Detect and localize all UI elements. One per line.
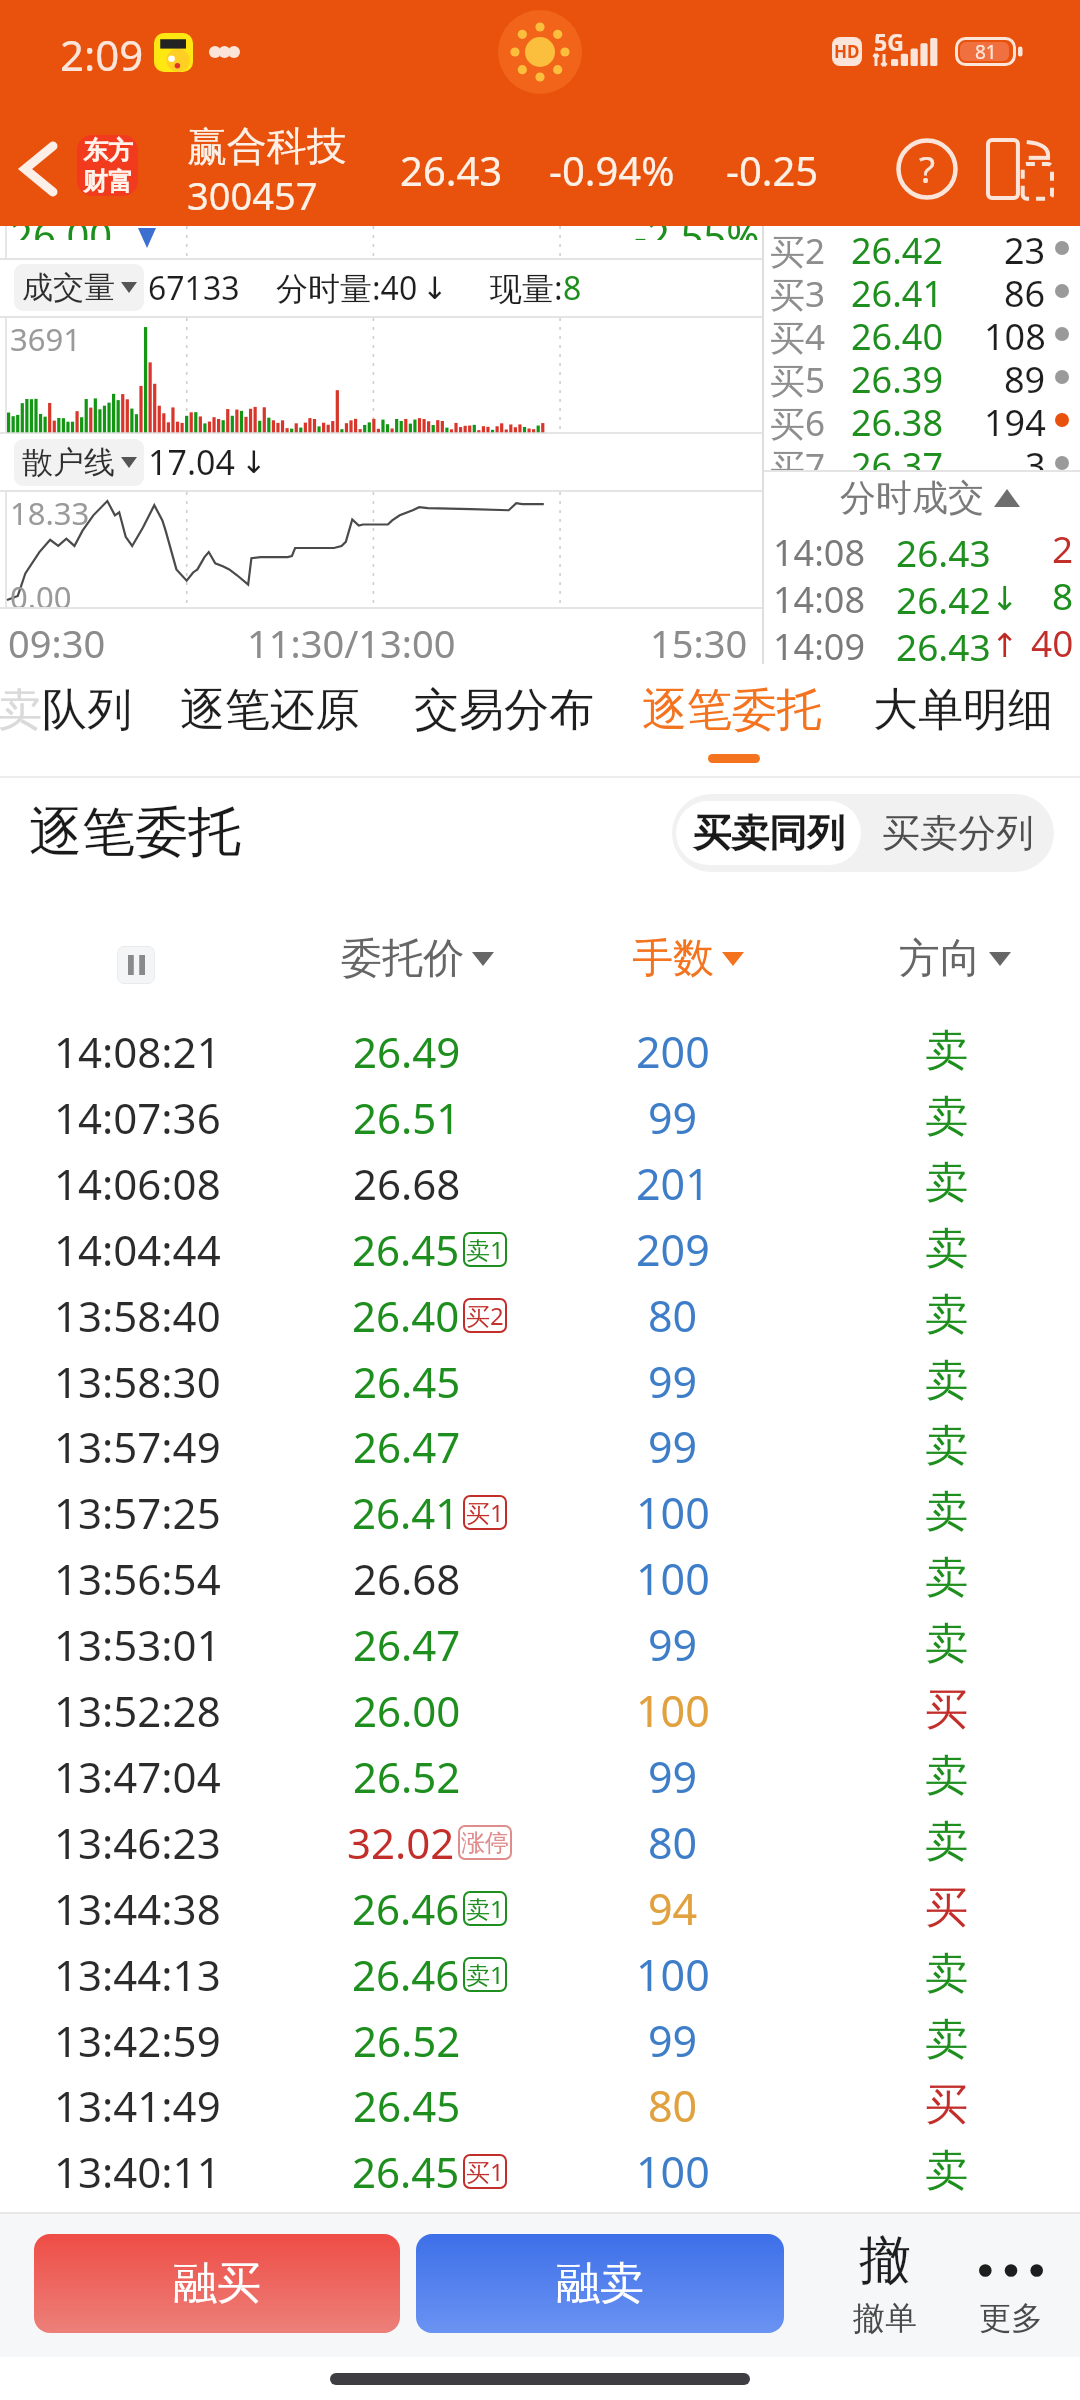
button[interactable]: 14:04:44 [0, 1216, 1080, 1282]
staticText: 0.00 [10, 576, 72, 618]
staticText: 17.04 [148, 439, 235, 485]
staticText: 买 [925, 1881, 968, 1935]
button[interactable]: 13:57:49 [0, 1413, 1080, 1479]
staticText: 卖 [925, 1156, 968, 1210]
staticText: 14:08:21 [54, 1023, 221, 1080]
button[interactable]: 融卖 [416, 2234, 784, 2333]
staticText: 卖 [925, 1485, 968, 1539]
button[interactable]: 大单明细 [873, 664, 1053, 756]
staticText: ↓ [422, 270, 448, 306]
button[interactable]: 逐笔委托 [642, 664, 822, 756]
staticText: 手数 [632, 933, 714, 985]
button[interactable]: 13:46:23 [0, 1809, 1080, 1875]
button[interactable]: 买卖同列 [676, 801, 861, 865]
staticText: 26.45 [352, 2143, 460, 2200]
button[interactable]: 买6 [764, 398, 1080, 441]
staticText: 卖 [925, 1815, 968, 1869]
button[interactable]: 方向 [865, 909, 1045, 1009]
staticText: 80 [648, 1286, 698, 1345]
staticText: 26.00 [353, 1682, 461, 1739]
staticText: 买2 [466, 1299, 504, 1332]
button[interactable]: 13:57:25 [0, 1479, 1080, 1545]
button[interactable]: 13:44:13 [0, 1941, 1080, 2007]
button[interactable]: Help [885, 127, 969, 211]
staticText: 11:30/13:00 [247, 617, 456, 669]
staticText: 13:53:01 [54, 1616, 221, 1673]
staticText: 卖 [925, 1024, 968, 1078]
staticText: 2:09 [60, 26, 144, 83]
staticText: 100 [636, 1549, 710, 1608]
staticText: 融卖 [556, 2256, 644, 2311]
staticText: 散户线 [22, 443, 115, 482]
staticText: 14:09 [773, 622, 866, 664]
staticText: 卖 [925, 2013, 968, 2067]
button[interactable]: 13:40:11 [0, 2138, 1080, 2204]
button[interactable]: 买3 [764, 269, 1080, 312]
button[interactable]: 分时成交 [764, 471, 1080, 523]
staticText: 卖 [925, 1617, 968, 1671]
button[interactable]: 成交量 [14, 264, 144, 311]
staticText: 分时量:40 [276, 266, 418, 310]
button[interactable]: 买2 [764, 226, 1080, 269]
staticText: 100 [636, 1483, 710, 1542]
button[interactable]: 14:07:36 [0, 1084, 1080, 1150]
button[interactable]: 逐笔还原 [180, 664, 360, 756]
button[interactable]: 13:47:04 [0, 1743, 1080, 1809]
button[interactable]: East Money logo [77, 135, 138, 196]
staticText: -0.25 [726, 143, 819, 197]
staticText: 逐笔还原 [180, 682, 360, 739]
staticText: 14:04:44 [54, 1221, 221, 1278]
staticText: -0.94% [549, 143, 675, 197]
staticText: 财富 [83, 166, 133, 196]
button[interactable]: 委托价 [327, 909, 507, 1009]
button[interactable]: 13:58:40 [0, 1282, 1080, 1348]
button[interactable]: 13:41:49 [0, 2072, 1080, 2138]
button[interactable]: 13:56:54 [0, 1545, 1080, 1611]
staticText: 撤单 [853, 2298, 917, 2338]
button[interactable]: 买卖分列 [865, 801, 1050, 865]
staticText: 卖1 [466, 1233, 504, 1266]
button[interactable]: 13:58:30 [0, 1348, 1080, 1414]
staticText: 买6 [770, 399, 826, 442]
button[interactable]: 13:44:38 [0, 1875, 1080, 1941]
staticText: 26.41 [851, 269, 944, 312]
button[interactable]: 13:52:28 [0, 1677, 1080, 1743]
staticText: 26.39 [851, 355, 944, 398]
button[interactable]: 手数 [598, 909, 778, 1009]
button[interactable]: 14:08 [764, 523, 1080, 570]
staticText: 26.68 [353, 1155, 461, 1212]
button[interactable]: Pause updates [117, 946, 155, 984]
button[interactable]: 14:09 [764, 617, 1080, 664]
staticText: 23 [1004, 226, 1046, 269]
button[interactable]: 散户线 [14, 439, 144, 486]
staticText: 26.42 [851, 226, 944, 269]
button[interactable]: 融买 [34, 2234, 400, 2333]
button[interactable]: 买4 [764, 312, 1080, 355]
button[interactable]: 13:53:01 [0, 1611, 1080, 1677]
button[interactable]: 撤 [812, 2214, 958, 2354]
staticText: 买7 [770, 442, 826, 470]
staticText: 13:52:28 [54, 1682, 221, 1739]
staticText: 80 [648, 2076, 698, 2135]
staticText: 26.40 [851, 312, 944, 355]
staticText: 成交量 [22, 268, 115, 307]
button[interactable]: 买7 [764, 441, 1080, 470]
staticText: 买 [925, 2078, 968, 2132]
button[interactable]: 买5 [764, 355, 1080, 398]
button[interactable]: 13:42:59 [0, 2007, 1080, 2073]
button[interactable]: 14:08:21 [0, 1018, 1080, 1084]
staticText: 13:57:49 [54, 1418, 221, 1475]
staticText: 卖 [925, 1947, 968, 2001]
button[interactable]: 交易分布 [414, 664, 594, 756]
staticText: 现量: [490, 266, 563, 310]
button[interactable]: Switch device [978, 127, 1062, 211]
staticText: 99 [648, 1417, 698, 1476]
button[interactable]: 14:08 [764, 570, 1080, 617]
staticText: 99 [648, 1615, 698, 1674]
staticText: 108 [984, 312, 1046, 355]
button[interactable]: 卖 [0, 664, 154, 756]
button[interactable]: Back [0, 112, 78, 226]
button[interactable]: More [942, 2214, 1080, 2354]
button[interactable]: 14:06:08 [0, 1150, 1080, 1216]
staticText: 买1 [466, 2155, 504, 2188]
